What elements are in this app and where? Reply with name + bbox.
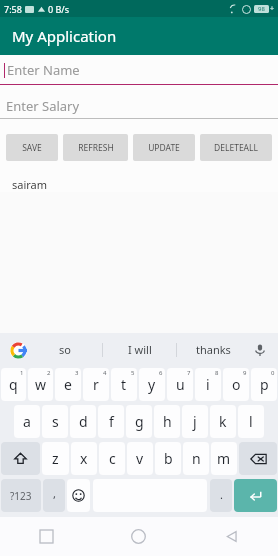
button[interactable]: Voice input [250, 340, 270, 360]
staticText: , [53, 486, 56, 501]
button[interactable]: i [195, 368, 221, 401]
staticText: 2 [47, 369, 51, 377]
button[interactable]: SAVE [6, 134, 58, 161]
button[interactable]: Emoji [67, 479, 90, 512]
button[interactable]: x [71, 442, 97, 475]
staticText: 4 [103, 369, 107, 377]
staticText: u [176, 375, 185, 394]
button[interactable]: Enter Salary [0, 93, 278, 119]
button[interactable]: o [223, 368, 249, 401]
button[interactable]: a [14, 405, 40, 438]
button[interactable]: UPDATE [133, 134, 195, 161]
staticText: 8 [215, 369, 219, 377]
staticText: + [270, 4, 275, 14]
staticText: UPDATE [148, 142, 180, 154]
staticText: d [79, 412, 88, 431]
button[interactable]: b [155, 442, 181, 475]
staticText: 3 [75, 369, 79, 377]
staticText: c [109, 449, 116, 468]
staticText: l [249, 412, 253, 431]
button[interactable]: so [28, 333, 102, 366]
staticText: v [136, 449, 144, 468]
staticText: h [163, 412, 172, 431]
button[interactable]: Enter [234, 479, 277, 512]
button[interactable]: z [42, 442, 69, 475]
button[interactable]: u [167, 368, 193, 401]
button[interactable]: n [183, 442, 209, 475]
button[interactable]: v [127, 442, 153, 475]
staticText: I will [128, 342, 152, 357]
staticText: SAVE [22, 142, 42, 154]
staticText: ?123 [10, 489, 32, 503]
staticText: 0 B/s [48, 3, 69, 15]
button[interactable]: t [111, 368, 137, 401]
staticText: f [109, 412, 114, 431]
staticText: 7:58 [4, 3, 22, 15]
staticText: j [193, 412, 197, 431]
staticText: a [23, 412, 31, 431]
staticText: 6 [159, 369, 163, 377]
staticText: DELETEALL [214, 142, 258, 154]
staticText: sairam [12, 177, 48, 192]
staticText: t [121, 375, 127, 394]
button[interactable]: REFRESH [63, 134, 128, 161]
staticText: thanks [196, 342, 231, 357]
staticText: e [64, 375, 72, 394]
staticText: My Application [12, 26, 117, 46]
staticText: n [192, 449, 201, 468]
staticText: q [9, 375, 18, 394]
button[interactable]: Recent apps [0, 517, 92, 556]
button[interactable]: Google [8, 340, 28, 360]
staticText: s [52, 412, 59, 431]
button[interactable]: ?123 [1, 479, 41, 512]
button[interactable]: thanks [177, 333, 250, 366]
button[interactable]: c [99, 442, 125, 475]
staticText: g [135, 412, 144, 431]
button[interactable]: p [251, 368, 277, 401]
button[interactable]: k [210, 405, 236, 438]
button[interactable]: Enter Name [0, 55, 278, 85]
staticText: Enter Name [7, 61, 80, 79]
staticText: z [52, 449, 59, 468]
staticText: REFRESH [78, 142, 114, 154]
button[interactable]: y [139, 368, 165, 401]
button[interactable]: e [55, 368, 81, 401]
staticText: 5 [131, 369, 135, 377]
button[interactable]: . [210, 479, 232, 512]
staticText: i [206, 375, 210, 394]
button[interactable]: r [83, 368, 109, 401]
staticText: 0 [271, 369, 275, 377]
staticText: o [232, 375, 241, 394]
staticText: . [220, 487, 223, 502]
button[interactable]: l [238, 405, 264, 438]
button[interactable]: m [211, 442, 237, 475]
button[interactable]: h [154, 405, 180, 438]
staticText: 98 [258, 5, 265, 13]
staticText: 7 [187, 369, 191, 377]
staticText: b [164, 449, 173, 468]
staticText: y [148, 375, 156, 394]
button[interactable]: I will [103, 333, 176, 366]
staticText: m [217, 449, 231, 468]
staticText: so [59, 342, 71, 357]
button[interactable]: g [126, 405, 152, 438]
button[interactable]: j [182, 405, 208, 438]
button[interactable]: s [42, 405, 68, 438]
button[interactable]: , [43, 479, 65, 512]
button[interactable]: q [1, 368, 26, 401]
button[interactable]: Home [92, 517, 185, 556]
staticText: k [219, 412, 227, 431]
button[interactable]: Backspace [239, 442, 277, 475]
staticText: x [80, 449, 88, 468]
button[interactable]: w [28, 368, 53, 401]
staticText: 9 [243, 369, 247, 377]
button[interactable]: DELETEALL [200, 134, 272, 161]
staticText: 1 [20, 369, 24, 377]
button[interactable]: Shift [1, 442, 40, 475]
staticText: p [260, 375, 269, 394]
button[interactable]: d [70, 405, 96, 438]
staticText: w [35, 375, 47, 394]
button[interactable]: Back [185, 517, 278, 556]
button[interactable]: f [98, 405, 124, 438]
